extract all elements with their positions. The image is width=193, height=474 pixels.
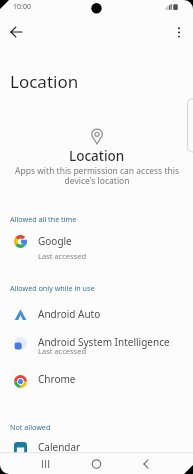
button[interactable] [169,22,189,43]
button[interactable] [84,453,110,474]
button[interactable]: Android System Intelligence [4,333,188,361]
staticText: Apps with this permission can access thi… [15,165,179,186]
button[interactable]: Chrome [4,371,188,393]
staticText: Calendar [38,440,81,454]
button[interactable] [33,453,59,474]
button[interactable]: Google [4,230,188,260]
staticText: Android Auto [38,307,101,321]
staticText: Last accessed [38,251,87,261]
staticText: Chrome [38,372,76,386]
staticText: Allowed only while in use [10,283,95,293]
button[interactable] [5,21,28,43]
button[interactable]: Android Auto [4,303,188,325]
staticText: Location [69,147,125,165]
staticText: Last accessed [38,346,87,356]
button[interactable] [133,453,159,474]
staticText: 10:00 [13,2,31,12]
staticText: Location [10,70,79,93]
staticText: Google [38,234,72,248]
staticText: Android System Intelligence [38,335,170,349]
staticText: Allowed all the time [10,214,77,224]
staticText: Not allowed [10,422,51,432]
button[interactable]: Calendar [4,438,188,453]
